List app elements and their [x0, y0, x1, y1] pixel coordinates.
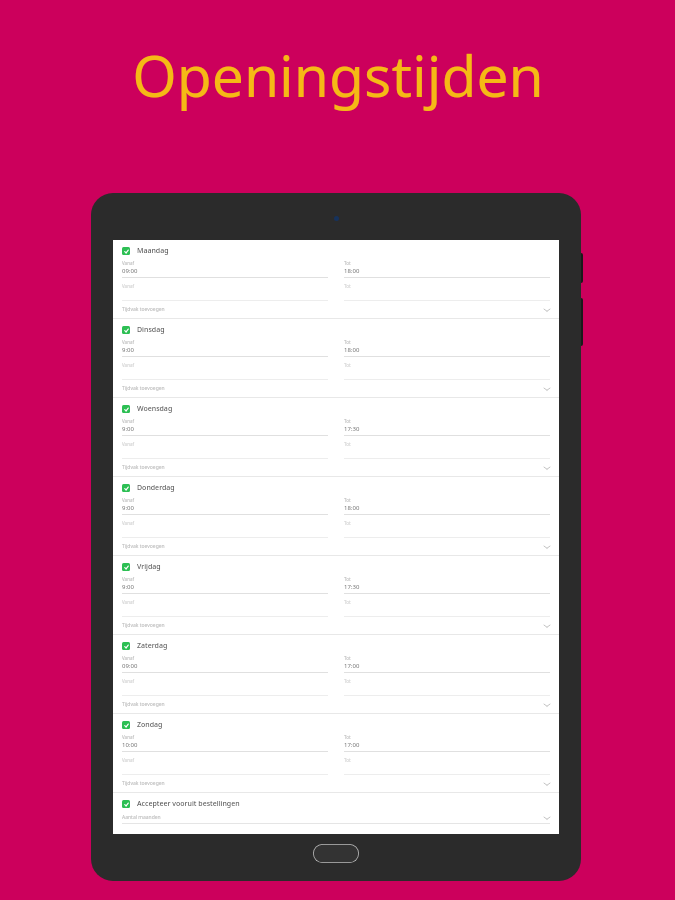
staticText: Tot	[344, 260, 351, 266]
staticText: Tot	[344, 757, 351, 763]
button[interactable]: Tot	[344, 497, 550, 515]
button[interactable]: Toggle day	[113, 477, 559, 555]
button[interactable]: Tot	[344, 260, 550, 278]
button[interactable]: Toggle day	[113, 556, 559, 634]
staticText: 18:00	[344, 346, 360, 354]
staticText: Vanaf	[122, 757, 134, 763]
button[interactable]: Tot	[344, 441, 550, 459]
button[interactable]: Tot	[344, 362, 550, 380]
button[interactable]: Vanaf	[122, 599, 328, 617]
button[interactable]: Vanaf	[122, 339, 328, 357]
button[interactable]: Tot	[344, 520, 550, 538]
staticText: 18:00	[344, 267, 360, 275]
staticText: Tijdvak toevoegen	[122, 306, 165, 313]
staticText: Vanaf	[122, 339, 134, 345]
button[interactable]: Tot	[344, 418, 550, 436]
button[interactable]: Toggle day	[122, 484, 130, 492]
button[interactable]: Toggle day	[113, 319, 559, 397]
button[interactable]: Toggle day	[113, 635, 559, 713]
staticText: 9:00	[122, 346, 134, 354]
staticText: Vanaf	[122, 497, 134, 503]
staticText: Vanaf	[122, 678, 134, 684]
button[interactable]: Vanaf	[122, 678, 328, 696]
staticText: Donderdag	[137, 483, 175, 493]
staticText: Tijdvak toevoegen	[122, 622, 165, 629]
staticText: Tot	[344, 362, 351, 368]
staticText: Aantal maanden	[122, 814, 161, 821]
button[interactable]: Vanaf	[122, 260, 328, 278]
staticText: Dinsdag	[137, 325, 165, 335]
button[interactable]: Tot	[344, 283, 550, 301]
button[interactable]: Tot	[344, 599, 550, 617]
button[interactable]: Toggle day	[122, 247, 130, 255]
staticText: 17:30	[344, 425, 360, 433]
staticText: 18:00	[344, 504, 360, 512]
button[interactable]: Tot	[344, 655, 550, 673]
staticText: 09:00	[122, 662, 138, 670]
staticText: Tot	[344, 734, 351, 740]
button[interactable]: Toggle day	[113, 714, 559, 792]
staticText: Vanaf	[122, 520, 134, 526]
staticText: Tot	[344, 339, 351, 345]
button[interactable]: Toggle day	[122, 405, 130, 413]
staticText: 17:30	[344, 583, 360, 591]
button[interactable]: Vanaf	[122, 576, 328, 594]
button[interactable]: Toggle day	[113, 240, 559, 318]
button[interactable]: Vanaf	[122, 655, 328, 673]
button[interactable]: Toggle day	[113, 793, 559, 834]
button[interactable]: Toggle day	[113, 398, 559, 476]
button[interactable]: Tot	[344, 757, 550, 775]
button[interactable]: Toggle day	[122, 800, 130, 808]
button[interactable]: Tot	[344, 734, 550, 752]
button[interactable]: Vanaf	[122, 757, 328, 775]
button[interactable]: Vanaf	[122, 441, 328, 459]
button[interactable]: Tot	[344, 576, 550, 594]
button[interactable]: Toggle day	[122, 563, 130, 571]
staticText: Maandag	[137, 246, 169, 256]
button[interactable]: Vanaf	[122, 418, 328, 436]
button[interactable]: Toggle day	[122, 642, 130, 650]
staticText: Vanaf	[122, 283, 134, 289]
staticText: Tot	[344, 283, 351, 289]
button[interactable]: Tot	[344, 339, 550, 357]
staticText: Vanaf	[122, 362, 134, 368]
staticText: Tot	[344, 418, 351, 424]
staticText: 9:00	[122, 583, 134, 591]
staticText: Tot	[344, 599, 351, 605]
staticText: Zondag	[137, 720, 163, 730]
button[interactable]: Vanaf	[122, 497, 328, 515]
button[interactable]: Vanaf	[122, 283, 328, 301]
staticText: Openingstijden	[132, 36, 544, 114]
staticText: Tot	[344, 520, 351, 526]
button[interactable]: Toggle day	[122, 721, 130, 729]
staticText: 10:00	[122, 741, 138, 749]
staticText: 09:00	[122, 267, 138, 275]
button[interactable]: Vanaf	[122, 734, 328, 752]
button[interactable]: Vanaf	[122, 520, 328, 538]
staticText: Tot	[344, 678, 351, 684]
staticText: Tot	[344, 441, 351, 447]
button[interactable]: Toggle day	[122, 326, 130, 334]
staticText: Vrijdag	[137, 562, 161, 572]
staticText: Accepteer vooruit bestellingen	[137, 799, 240, 809]
staticText: Tot	[344, 655, 351, 661]
staticText: 17:00	[344, 662, 360, 670]
button[interactable]: Vanaf	[122, 362, 328, 380]
button[interactable]: Tot	[344, 678, 550, 696]
staticText: 9:00	[122, 504, 134, 512]
button[interactable]: Home	[313, 844, 359, 863]
staticText: Vanaf	[122, 260, 134, 266]
